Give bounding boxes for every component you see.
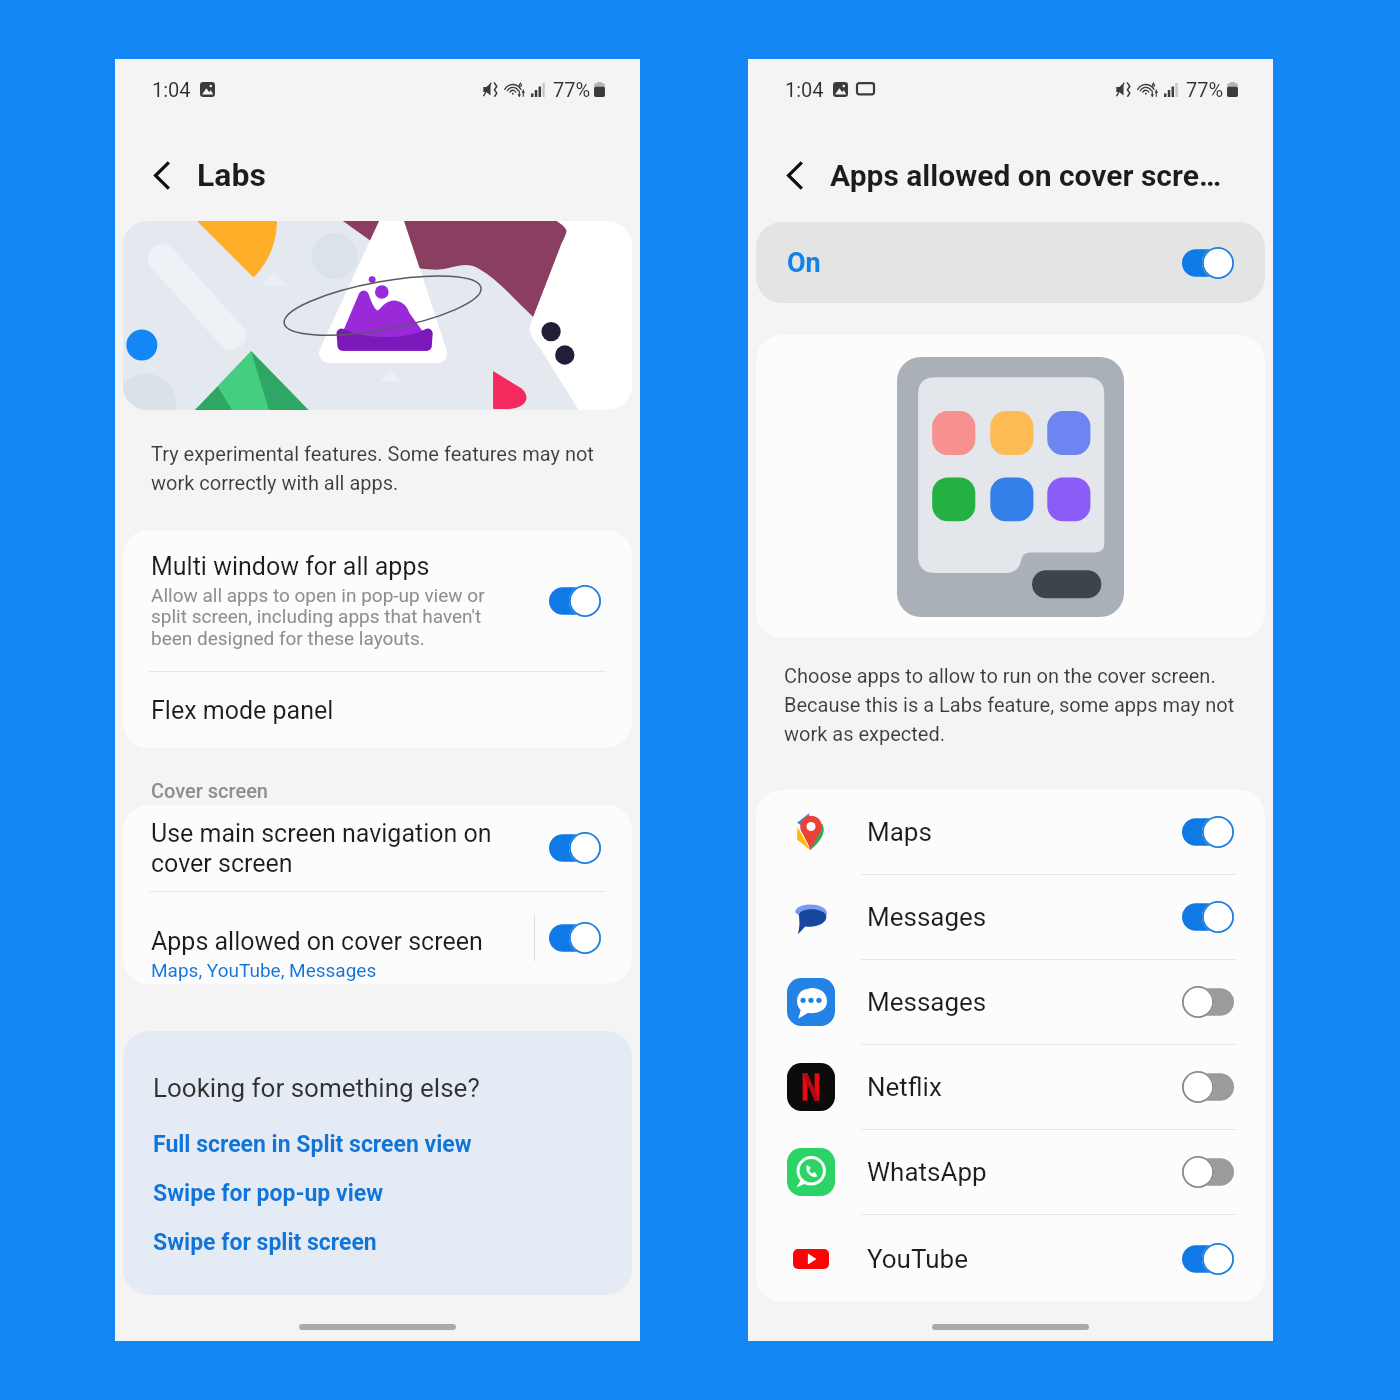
- button[interactable]: On: [549, 832, 601, 864]
- button[interactable]: On: [756, 222, 1265, 303]
- staticText: YouTube: [867, 1244, 1182, 1274]
- button[interactable]: WhatsApp: [756, 1130, 1265, 1214]
- button[interactable]: Flex mode panel: [123, 672, 632, 748]
- staticText: Cover screen: [151, 779, 268, 802]
- staticText: On: [787, 247, 1182, 279]
- button[interactable]: YouTube: [756, 1215, 1265, 1302]
- button[interactable]: Messages: [756, 875, 1265, 959]
- staticText: Labs: [197, 156, 266, 194]
- button[interactable]: Use main screen navigation on cover scre…: [123, 805, 632, 891]
- staticText: Allow all apps to open in pop-up view or…: [151, 584, 499, 650]
- button[interactable]: On: [1182, 901, 1234, 933]
- button[interactable]: Apps allowed on cover screen: [123, 892, 534, 984]
- staticText: Swipe for split screen: [153, 1229, 377, 1256]
- staticText: Netflix: [867, 1072, 1182, 1102]
- button[interactable]: On: [1182, 1243, 1234, 1275]
- staticText: Full screen in Split screen view: [153, 1131, 472, 1158]
- staticText: Choose apps to allow to run on the cover…: [784, 664, 1261, 746]
- staticText: 77%: [553, 78, 591, 101]
- button[interactable]: Off: [1182, 1156, 1234, 1188]
- staticText: WhatsApp: [867, 1157, 1182, 1187]
- button[interactable]: Off: [1182, 1071, 1234, 1103]
- button[interactable]: On: [549, 922, 601, 954]
- staticText: Use main screen navigation on cover scre…: [151, 819, 539, 878]
- staticText: Maps, YouTube, Messages: [151, 959, 377, 981]
- button[interactable]: Navigate up: [772, 152, 818, 198]
- button[interactable]: On: [1182, 816, 1234, 848]
- staticText: 1:04: [785, 78, 824, 101]
- button[interactable]: Swipe for split screen: [153, 1229, 377, 1256]
- button[interactable]: Navigate up: [139, 152, 185, 198]
- staticText: Swipe for pop-up view: [153, 1180, 384, 1207]
- button[interactable]: On: [549, 585, 601, 617]
- button[interactable]: Swipe for pop-up view: [153, 1180, 384, 1207]
- staticText: Apps allowed on cover scre…: [830, 158, 1222, 193]
- staticText: Looking for something else?: [153, 1073, 480, 1103]
- button[interactable]: Multi window for all apps: [123, 530, 632, 671]
- staticText: 77%: [1186, 78, 1224, 101]
- button[interactable]: Maps: [756, 790, 1265, 874]
- staticText: Apps allowed on cover screen: [151, 927, 483, 956]
- button[interactable]: Netflix: [756, 1045, 1265, 1129]
- staticText: 1:04: [152, 78, 191, 101]
- staticText: Messages: [867, 902, 1182, 932]
- staticText: Flex mode panel: [151, 696, 334, 725]
- staticText: Maps: [867, 817, 1182, 847]
- staticText: Messages: [867, 987, 1182, 1017]
- button[interactable]: On: [1182, 247, 1234, 279]
- staticText: Try experimental features. Some features…: [151, 442, 624, 495]
- button[interactable]: Full screen in Split screen view: [153, 1131, 472, 1158]
- button[interactable]: Off: [1182, 986, 1234, 1018]
- staticText: Multi window for all apps: [151, 552, 430, 581]
- button[interactable]: Messages: [756, 960, 1265, 1044]
